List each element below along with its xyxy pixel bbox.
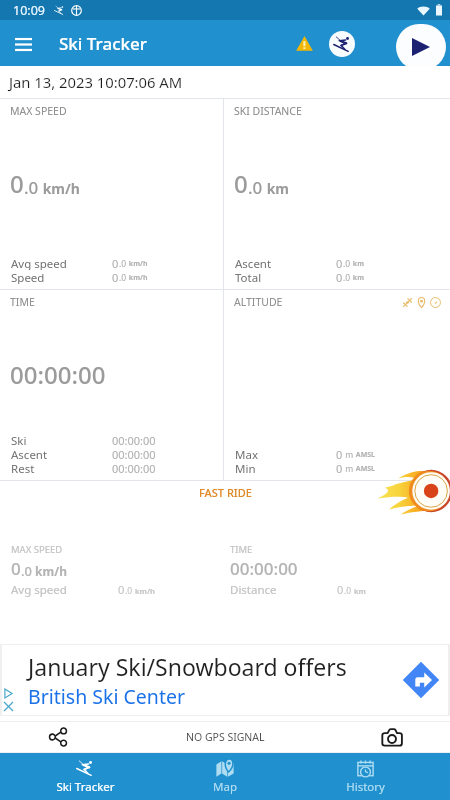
staticText: 0: [11, 557, 21, 580]
staticText: Ski Tracker: [56, 779, 115, 795]
staticText: 00:00:00: [112, 447, 156, 461]
staticText: TIME: [10, 295, 35, 309]
staticText: British Ski Center: [28, 683, 185, 710]
staticText: 0: [234, 167, 248, 200]
staticText: Max: [235, 447, 258, 461]
staticText: 0: [10, 167, 24, 200]
staticText: .0: [21, 562, 32, 580]
button[interactable]: Start: [396, 24, 446, 70]
staticText: AMSL: [354, 464, 376, 474]
button[interactable]: Ski mode: [325, 27, 358, 60]
staticText: Avg speed: [11, 256, 67, 270]
button[interactable]: TIME: [0, 290, 223, 480]
staticText: Ski: [11, 433, 27, 447]
staticText: km/h: [39, 179, 80, 198]
staticText: History: [346, 779, 385, 795]
staticText: .0: [343, 272, 351, 284]
staticText: km/h: [127, 273, 148, 283]
staticText: TIME: [230, 543, 253, 556]
staticText: ALTITUDE: [234, 295, 283, 309]
button[interactable]: History: [295, 753, 435, 800]
staticText: .0: [344, 585, 352, 597]
staticText: 00:00:00: [112, 461, 156, 475]
staticText: NO GPS SIGNAL: [186, 730, 265, 744]
staticText: km: [263, 179, 289, 198]
staticText: Map: [213, 779, 237, 795]
staticText: .0: [125, 585, 133, 597]
staticText: Min: [235, 461, 256, 475]
staticText: 0: [337, 582, 344, 597]
staticText: Total: [235, 270, 262, 284]
staticText: 0: [336, 256, 343, 270]
staticText: 00:00:00: [10, 358, 106, 391]
staticText: Avg speed: [11, 582, 67, 598]
staticText: km/h: [127, 259, 148, 269]
staticText: January Ski/Snowboard offers: [28, 651, 347, 682]
staticText: Ski Tracker: [59, 32, 147, 55]
staticText: 0: [118, 582, 125, 597]
staticText: km: [351, 259, 364, 269]
staticText: Jan 13, 2023 10:07:06 AM: [9, 72, 183, 92]
button[interactable]: January Ski/Snowboard offers: [2, 645, 448, 715]
staticText: km: [352, 586, 366, 596]
button[interactable]: Menu: [7, 27, 40, 60]
staticText: m: [343, 449, 354, 461]
staticText: MAX SPEED: [11, 543, 63, 556]
staticText: .0: [24, 176, 39, 199]
staticText: m: [343, 463, 354, 475]
staticText: SKI DISTANCE: [234, 104, 302, 118]
staticText: .0: [119, 258, 127, 270]
staticText: km/h: [32, 563, 68, 579]
staticText: 00:00:00: [112, 433, 156, 447]
staticText: .0: [343, 258, 351, 270]
staticText: 0: [336, 447, 343, 461]
staticText: Rest: [11, 461, 35, 475]
staticText: 0: [336, 270, 343, 284]
staticText: MAX SPEED: [10, 104, 67, 118]
staticText: 00:00:00: [230, 557, 298, 580]
staticText: .0: [248, 176, 263, 199]
button[interactable]: Share: [0, 722, 116, 752]
staticText: 10:09: [13, 2, 45, 19]
staticText: 0: [336, 461, 343, 475]
button[interactable]: Camera: [334, 722, 450, 752]
staticText: Distance: [230, 582, 277, 598]
staticText: Speed: [11, 270, 45, 284]
staticText: .0: [119, 272, 127, 284]
button[interactable]: Warning: [288, 27, 321, 60]
button[interactable]: Map: [155, 753, 295, 800]
staticText: Ascent: [11, 447, 48, 461]
button[interactable]: Ski Tracker: [15, 753, 155, 800]
button[interactable]: SKI DISTANCE: [224, 99, 450, 289]
staticText: km/h: [133, 586, 155, 596]
staticText: km: [351, 273, 364, 283]
staticText: 0: [112, 256, 119, 270]
staticText: AMSL: [354, 450, 376, 460]
staticText: 0: [112, 270, 119, 284]
button[interactable]: MAX SPEED: [0, 99, 223, 289]
staticText: FAST RIDE: [199, 485, 252, 500]
staticText: Ascent: [235, 256, 272, 270]
button[interactable]: ALTITUDE: [224, 290, 450, 480]
